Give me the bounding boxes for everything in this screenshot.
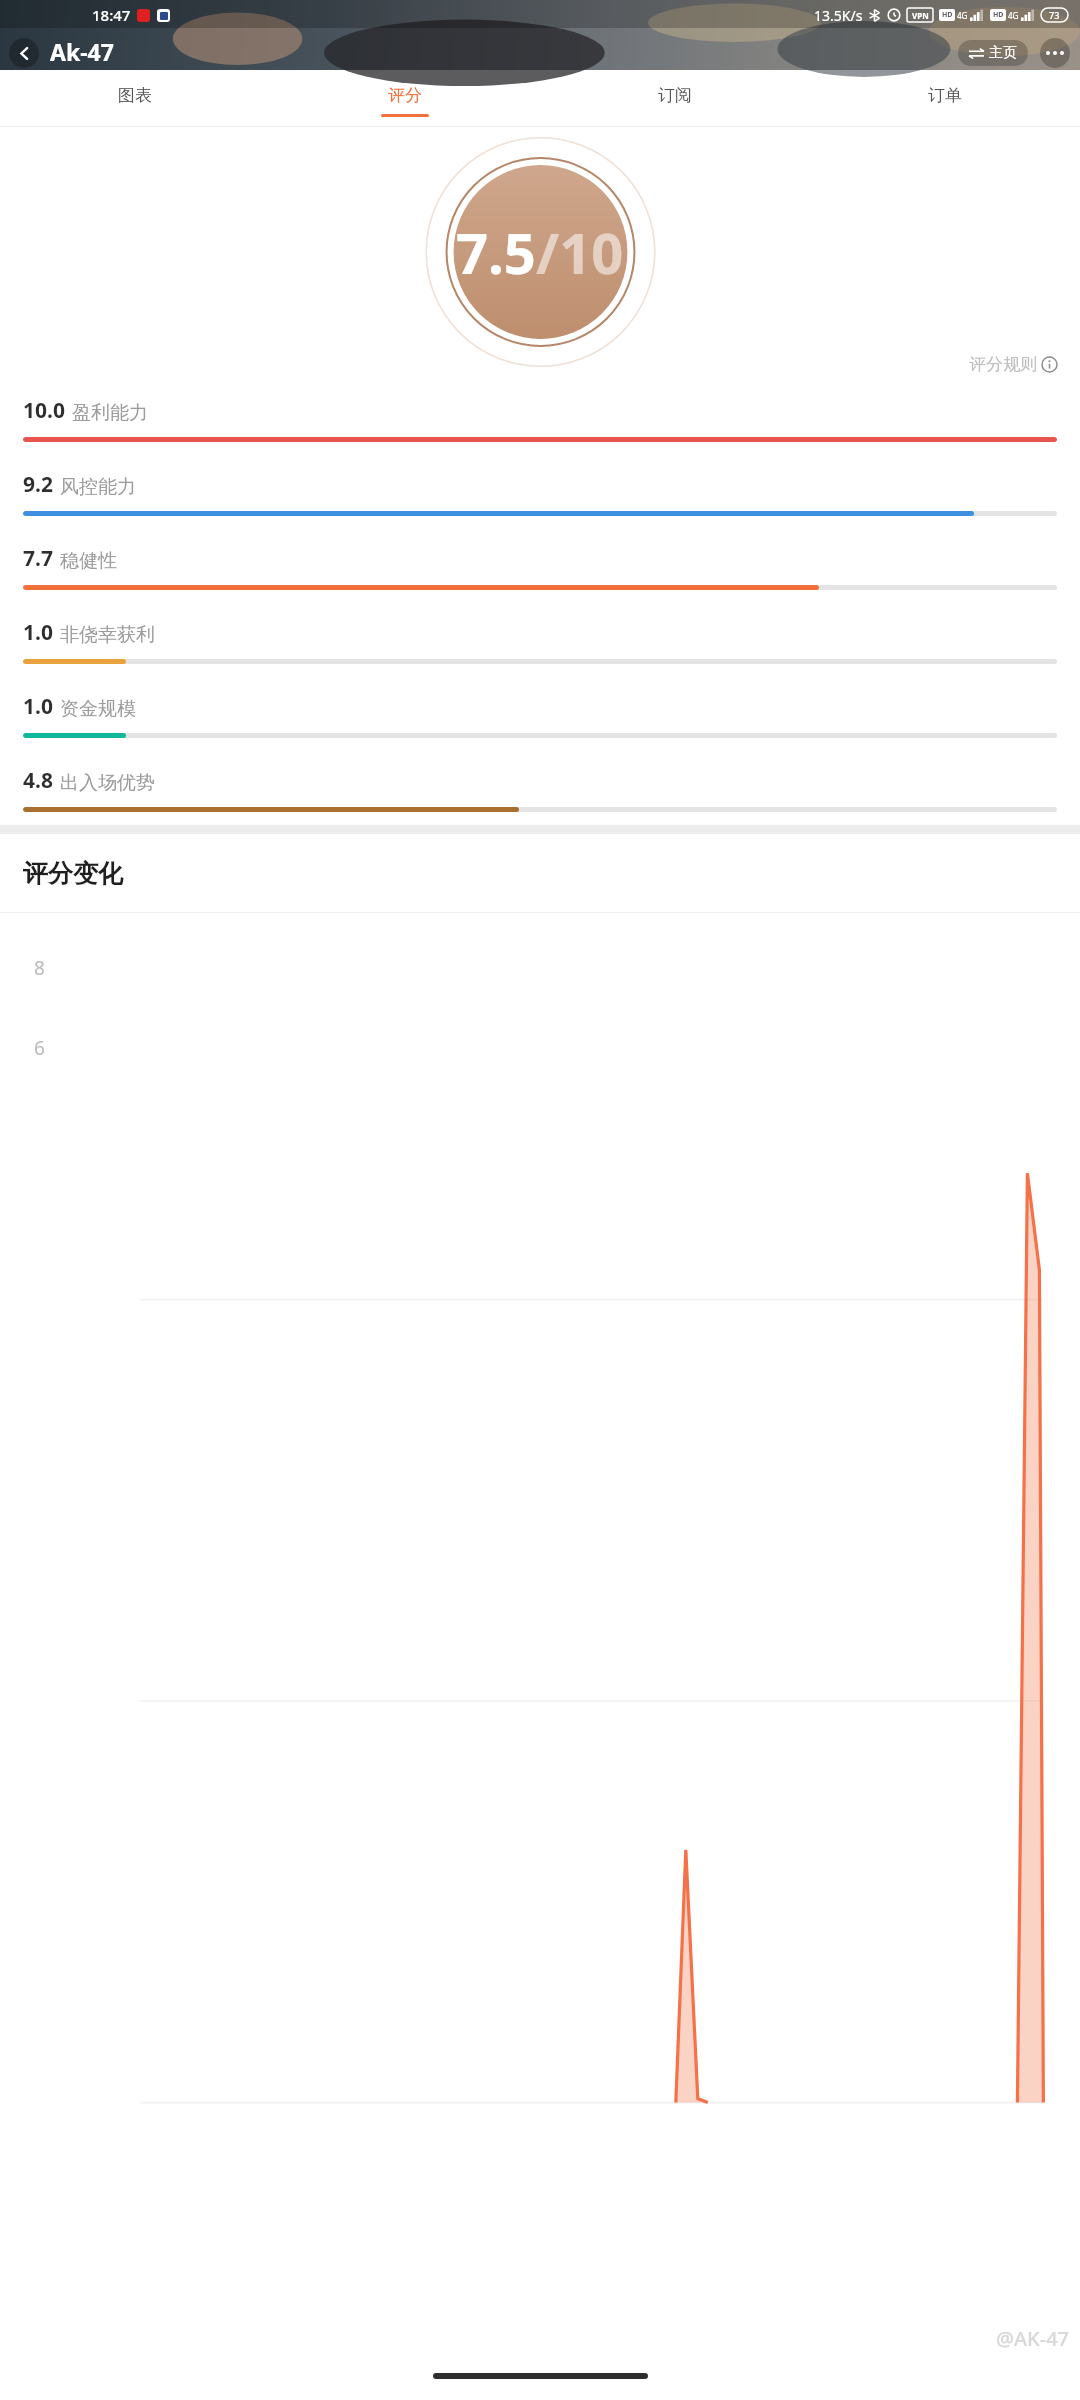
button[interactable]: 评分	[270, 70, 540, 126]
staticText: 9.2	[23, 470, 53, 499]
staticText: #9 | ForexTimeFXTM-ECN	[50, 68, 207, 70]
staticText: 资金规模	[60, 697, 136, 721]
button[interactable]: 1.0	[23, 673, 1057, 747]
staticText: 订单	[928, 85, 962, 106]
button[interactable]: 图表	[0, 70, 270, 126]
button[interactable]: More options	[1040, 38, 1070, 68]
staticText: /10	[536, 214, 624, 290]
staticText: 4G	[1008, 10, 1019, 21]
staticText: 评分	[388, 85, 422, 106]
staticText: 评分变化	[23, 858, 123, 889]
staticText: 非侥幸获利	[60, 623, 155, 647]
button[interactable]: 订阅	[540, 70, 810, 126]
staticText: 盈利能力	[72, 401, 148, 425]
button[interactable]: 4.8	[23, 747, 1057, 821]
staticText: 1.0	[23, 618, 53, 647]
button[interactable]: 1.0	[23, 599, 1057, 673]
staticText: 评分规则	[969, 354, 1037, 375]
staticText: 8	[34, 955, 45, 981]
staticText: Ak-47	[50, 36, 114, 67]
button[interactable]: 9.2	[23, 451, 1057, 525]
button[interactable]: 评分规则	[969, 354, 1058, 375]
staticText: 4.8	[23, 766, 53, 795]
staticText: 73	[1049, 9, 1060, 21]
staticText: 7.7	[23, 544, 53, 573]
staticText: VPN	[912, 10, 929, 21]
button[interactable]: 主页	[958, 40, 1028, 66]
staticText: @AK-47	[996, 2325, 1070, 2352]
staticText: 主页	[989, 44, 1017, 62]
staticText: 4G	[957, 10, 968, 21]
button[interactable]: Back	[9, 38, 39, 68]
staticText: 13.5K/s	[814, 6, 863, 25]
button[interactable]: 订单	[810, 70, 1080, 126]
button[interactable]: 7.7	[23, 525, 1057, 599]
staticText: 6	[34, 1035, 45, 1061]
staticText: 18:47	[92, 5, 131, 25]
staticText: HD	[942, 10, 953, 20]
staticText: 10.0	[23, 396, 65, 425]
staticText: 7.5	[456, 214, 536, 290]
staticText: HD	[993, 10, 1004, 20]
staticText: 风控能力	[60, 475, 136, 499]
staticText: 稳健性	[60, 549, 117, 573]
button[interactable]: 10.0	[23, 377, 1057, 451]
staticText: 出入场优势	[60, 771, 155, 795]
staticText: 订阅	[658, 85, 692, 106]
staticText: 图表	[118, 85, 152, 106]
staticText: 1.0	[23, 692, 53, 721]
